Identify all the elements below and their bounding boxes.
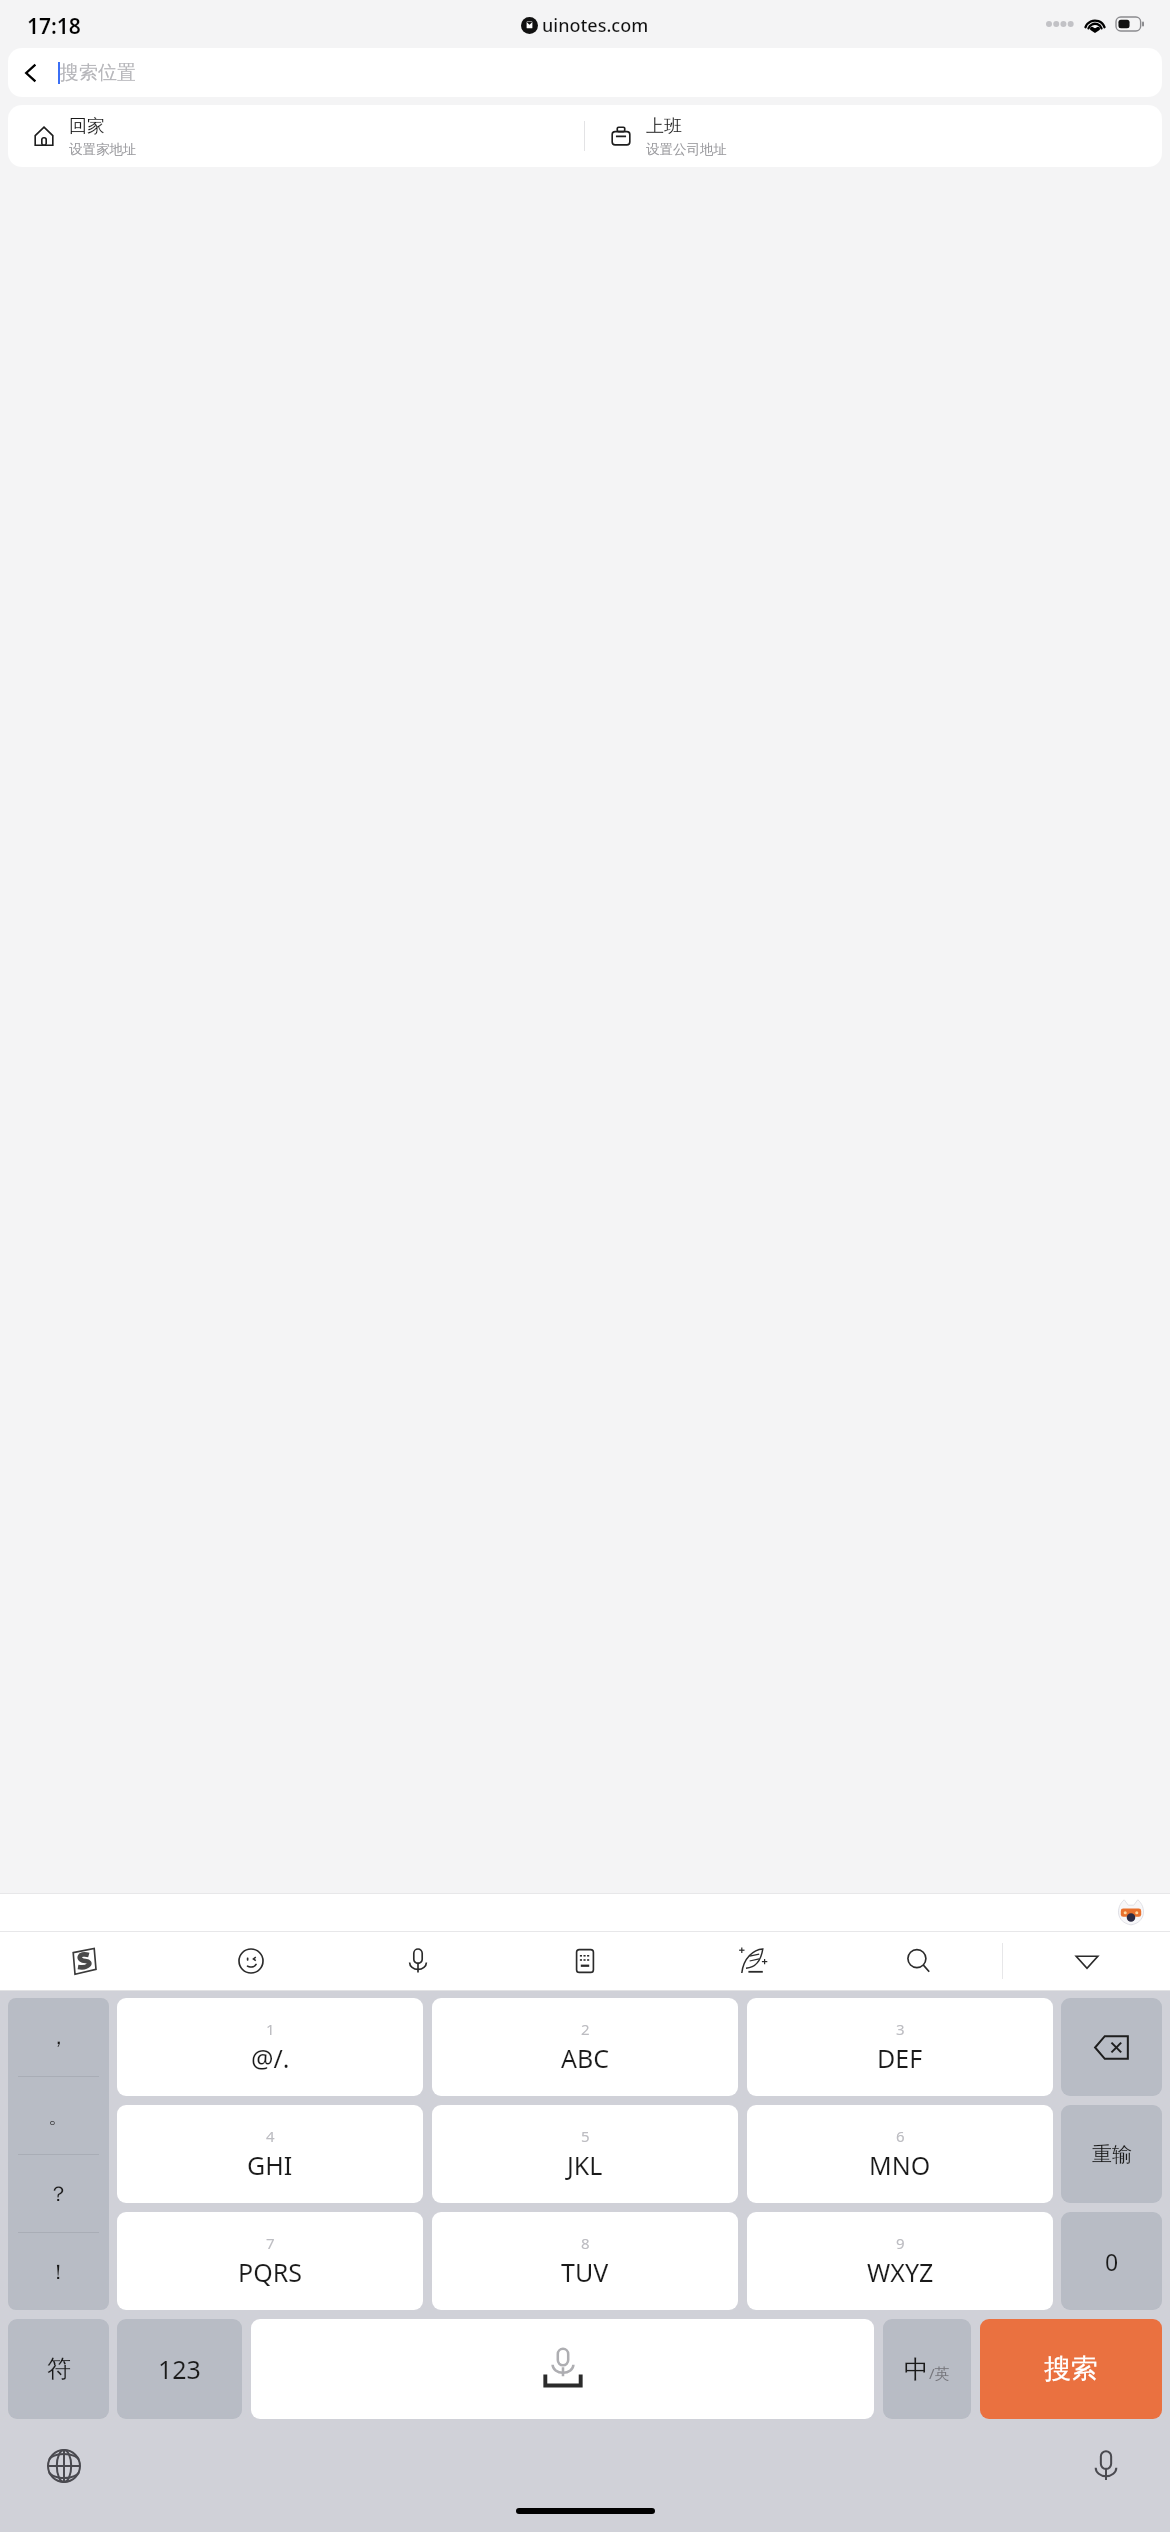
staticText: ？ (48, 2181, 69, 2207)
button[interactable]: 9 (747, 2212, 1053, 2310)
button[interactable]: Handwriting (668, 1931, 835, 1991)
button[interactable]: 7 (117, 2212, 423, 2310)
button[interactable]: 2 (432, 1998, 738, 2096)
staticText: ， (48, 2024, 69, 2050)
button[interactable]: Collapse (1003, 1931, 1170, 1991)
button[interactable]: Space (251, 2319, 874, 2419)
button[interactable]: Keyboard (501, 1931, 668, 1991)
staticText: /英 (929, 2363, 950, 2383)
button[interactable]: Back (8, 50, 54, 96)
staticText: 重输 (1092, 2142, 1132, 2167)
button[interactable]: 符 (8, 2319, 109, 2419)
staticText: 1 (266, 2019, 275, 2039)
staticText: WXYZ (867, 2255, 934, 2289)
button[interactable]: Avatar (1114, 1895, 1148, 1929)
button[interactable]: Emoji (167, 1931, 334, 1991)
staticText: uinotes.com (542, 13, 649, 38)
staticText: 123 (158, 2352, 201, 2386)
button[interactable]: 1 (117, 1998, 423, 2096)
staticText: 7 (266, 2233, 275, 2253)
staticText: 。 (48, 2103, 69, 2129)
button[interactable]: Voice (334, 1931, 501, 1991)
staticText: 2 (581, 2019, 590, 2039)
staticText: 5 (581, 2126, 590, 2146)
staticText: 设置家地址 (69, 141, 137, 158)
button[interactable]: 中 (883, 2319, 971, 2419)
staticText: DEF (877, 2041, 923, 2075)
staticText: 0 (1105, 2246, 1119, 2277)
staticText: JKL (567, 2148, 603, 2182)
button[interactable]: 0 (1061, 2212, 1162, 2310)
staticText: 回家 (69, 115, 105, 138)
staticText: 9 (896, 2233, 905, 2253)
button[interactable]: 6 (747, 2105, 1053, 2203)
staticText: 搜索位置 (60, 61, 136, 85)
staticText: TUV (561, 2255, 609, 2289)
staticText: 8 (581, 2233, 590, 2253)
button[interactable]: Back (8, 48, 1162, 97)
staticText: 设置公司地址 (646, 141, 727, 158)
staticText: 上班 (646, 115, 682, 138)
staticText: MNO (869, 2148, 931, 2182)
button[interactable]: 上班 (585, 105, 1162, 167)
staticText: 4 (266, 2126, 275, 2146)
button[interactable]: Voice input (1084, 2444, 1128, 2488)
staticText: PQRS (238, 2255, 302, 2289)
staticText: GHI (247, 2148, 293, 2182)
staticText: 17:18 (27, 12, 81, 41)
button[interactable]: 5 (432, 2105, 738, 2203)
button[interactable]: 重输 (1061, 2105, 1162, 2203)
button[interactable]: 回家 (8, 105, 584, 167)
button[interactable]: 8 (432, 2212, 738, 2310)
button[interactable]: 搜索 (980, 2319, 1162, 2419)
button[interactable]: Delete (1061, 1998, 1162, 2096)
staticText: @/. (251, 2041, 290, 2075)
staticText: 3 (896, 2019, 905, 2039)
button[interactable]: Search (835, 1931, 1002, 1991)
staticText: ABC (561, 2041, 610, 2075)
button[interactable]: ， (8, 1998, 109, 2310)
button[interactable]: 3 (747, 1998, 1053, 2096)
staticText: 搜索 (1044, 2352, 1098, 2386)
button[interactable]: 4 (117, 2105, 423, 2203)
button[interactable]: 123 (117, 2319, 242, 2419)
staticText: 中 (904, 2354, 929, 2385)
staticText: 6 (896, 2126, 905, 2146)
staticText: ！ (48, 2259, 69, 2285)
staticText: 符 (47, 2354, 71, 2384)
button[interactable]: Sogou (0, 1931, 167, 1991)
button[interactable]: Language (42, 2444, 86, 2488)
